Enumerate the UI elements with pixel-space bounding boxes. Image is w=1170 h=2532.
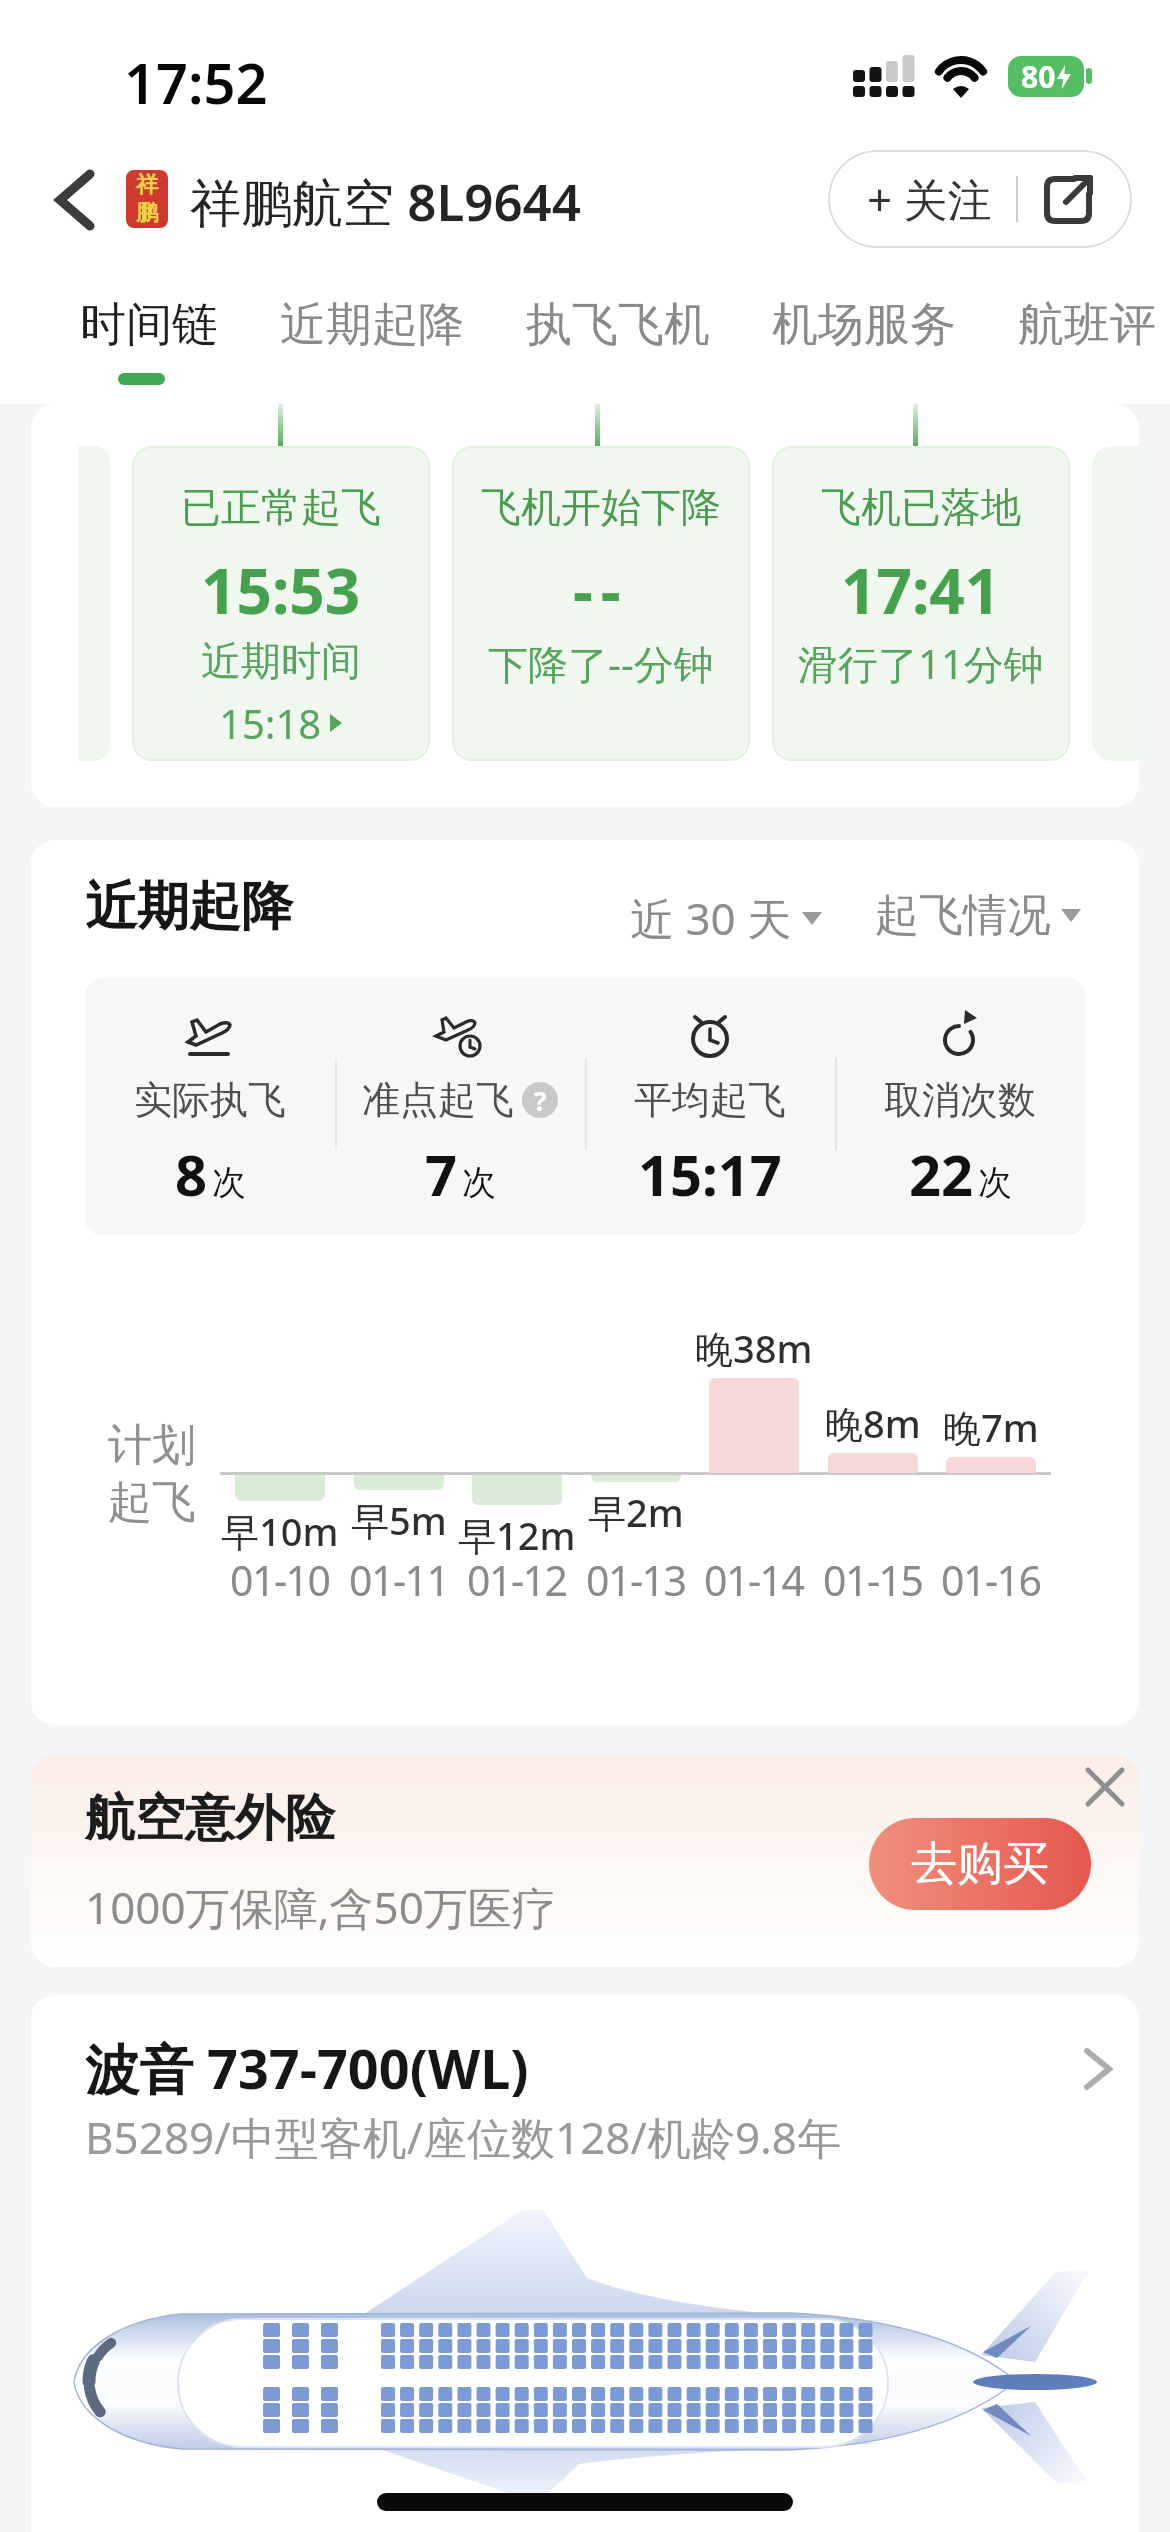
- staticText: 准点起飞: [362, 1076, 514, 1124]
- staticText: 近期起降: [85, 874, 293, 940]
- staticText: 次: [978, 1161, 1012, 1204]
- staticText: 近 30 天: [630, 888, 792, 948]
- staticText: 已正常起飞: [181, 482, 381, 532]
- staticText: 祥: [136, 171, 158, 199]
- staticText: 01-12: [467, 1552, 567, 1608]
- staticText: 01-10: [230, 1552, 330, 1608]
- button[interactable]: 机场服务: [772, 296, 956, 354]
- staticText: 航空意外险: [85, 1787, 335, 1850]
- staticText: 晚38m: [695, 1322, 813, 1374]
- staticText: ?: [534, 1083, 547, 1118]
- staticText: 取消次数: [884, 1076, 1036, 1124]
- button[interactable]: 近 30 天: [630, 888, 822, 948]
- staticText: B5289/中型客机/座位数128/机龄9.8年: [85, 2107, 842, 2167]
- button[interactable]: 时间链: [80, 296, 218, 354]
- staticText: 15:17: [638, 1136, 782, 1212]
- button[interactable]: + 关注: [828, 150, 1132, 248]
- button[interactable]: 起飞情况: [875, 888, 1081, 943]
- staticText: 去购买: [911, 1835, 1049, 1893]
- staticText: 01-13: [586, 1552, 686, 1608]
- button[interactable]: 飞机已落地: [772, 446, 1070, 761]
- staticText: 晚7m: [943, 1401, 1039, 1453]
- staticText: 波音 737-700(WL): [85, 2031, 529, 2105]
- staticText: 次: [462, 1161, 496, 1204]
- staticText: 次: [212, 1161, 246, 1204]
- button[interactable]: 去购买: [869, 1818, 1091, 1910]
- staticText: 近期时间: [201, 636, 361, 686]
- staticText: 01-16: [941, 1552, 1041, 1608]
- staticText: 下降了--分钟: [488, 636, 714, 691]
- button[interactable]: [34, 156, 114, 244]
- staticText: 飞机已落地: [821, 482, 1021, 532]
- button[interactable]: [1071, 1755, 1139, 1819]
- staticText: 计划 起飞: [108, 1418, 196, 1530]
- staticText: 早5m: [351, 1494, 447, 1546]
- staticText: 1000万保障,含50万医疗: [85, 1877, 556, 1937]
- staticText: 起飞情况: [875, 888, 1051, 943]
- button[interactable]: 飞机开始下降: [452, 446, 750, 761]
- button[interactable]: 航班评: [1018, 296, 1156, 354]
- staticText: 22: [909, 1136, 974, 1212]
- staticText: 平均起飞: [634, 1076, 786, 1124]
- staticText: 飞机开始下降: [481, 482, 721, 532]
- staticText: 17:52: [124, 44, 268, 120]
- staticText: 01-11: [349, 1552, 449, 1608]
- staticText: 15:18: [219, 696, 322, 750]
- staticText: 祥鹏航空 8L9644: [190, 166, 581, 236]
- staticText: 早2m: [588, 1486, 684, 1538]
- staticText: 80: [1021, 56, 1056, 97]
- staticText: 晚8m: [825, 1397, 921, 1449]
- staticText: 01-14: [704, 1552, 804, 1608]
- staticText: + 关注: [867, 169, 992, 229]
- button[interactable]: 波音 737-700(WL): [31, 1995, 1139, 2532]
- button[interactable]: 执飞飞机: [526, 296, 710, 354]
- staticText: 滑行了11分钟: [798, 636, 1044, 691]
- staticText: 7: [425, 1136, 458, 1212]
- staticText: 早10m: [221, 1505, 339, 1557]
- staticText: 实际执飞: [134, 1076, 286, 1124]
- staticText: 17:41: [841, 548, 1001, 632]
- button[interactable]: 近期起降: [280, 296, 464, 354]
- button[interactable]: 已正常起飞: [132, 446, 430, 761]
- staticText: 鹏: [136, 199, 158, 227]
- staticText: 早12m: [458, 1509, 576, 1561]
- staticText: --: [573, 548, 629, 632]
- staticText: 01-15: [823, 1552, 923, 1608]
- staticText: 15:53: [201, 548, 361, 632]
- staticText: 8: [175, 1136, 208, 1212]
